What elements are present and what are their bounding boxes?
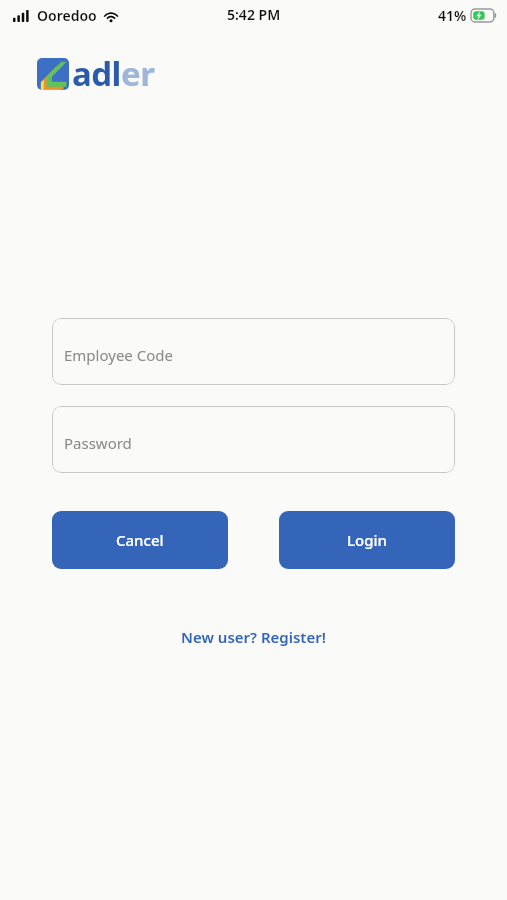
button[interactable]: New user? Register! <box>173 623 334 651</box>
staticText: er <box>121 51 155 96</box>
staticText: Login <box>347 530 387 550</box>
button[interactable]: Password <box>52 406 455 473</box>
staticText: 5:42 PM <box>227 5 281 24</box>
staticText: Ooredoo <box>37 6 97 25</box>
button[interactable]: Login <box>279 511 455 569</box>
staticText: New user? Register! <box>181 627 326 647</box>
staticText: Password <box>64 433 132 453</box>
staticText: 41% <box>438 6 467 25</box>
button[interactable]: Cancel <box>52 511 228 569</box>
staticText: Employee Code <box>64 345 173 365</box>
staticText: Cancel <box>116 530 164 550</box>
staticText: adl <box>72 51 121 96</box>
button[interactable]: Employee Code <box>52 318 455 385</box>
